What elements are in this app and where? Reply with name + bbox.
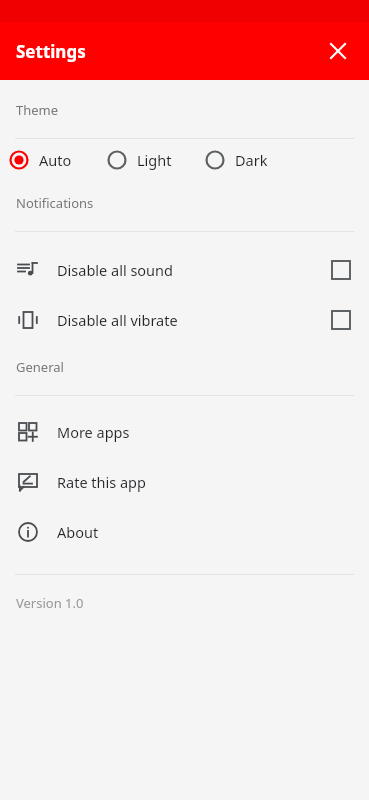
button[interactable]: Auto <box>7 148 72 172</box>
staticText: Disable all vibrate <box>57 310 329 330</box>
button[interactable]: Disable all sound <box>0 245 369 295</box>
button[interactable]: Light <box>105 148 172 172</box>
staticText: Auto <box>39 150 72 170</box>
staticText: Disable all sound <box>57 260 329 280</box>
staticText: General <box>16 358 64 376</box>
button[interactable]: Rate this app <box>0 457 369 507</box>
staticText: More apps <box>57 422 353 442</box>
staticText: Settings <box>16 40 86 63</box>
button[interactable]: About <box>0 507 369 557</box>
button[interactable]: Disable all vibrate <box>0 295 369 345</box>
button[interactable]: Close <box>321 34 355 68</box>
staticText: Rate this app <box>57 472 353 492</box>
staticText: Light <box>137 150 172 170</box>
staticText: Version 1.0 <box>16 594 84 612</box>
button[interactable]: Dark <box>203 148 268 172</box>
staticText: Theme <box>16 101 59 119</box>
staticText: Notifications <box>16 194 94 212</box>
staticText: About <box>57 522 353 542</box>
button[interactable]: More apps <box>0 407 369 457</box>
staticText: Dark <box>235 150 268 170</box>
